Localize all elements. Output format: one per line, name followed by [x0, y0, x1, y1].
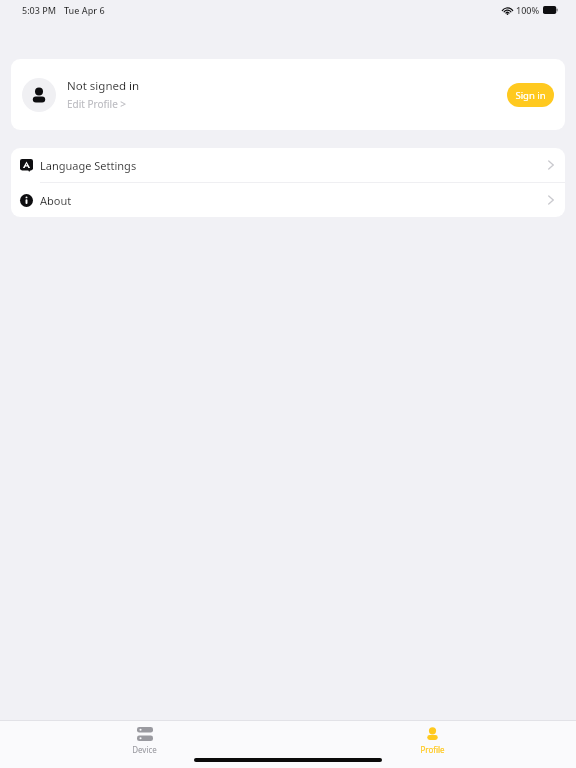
staticText: Not signed in: [67, 78, 140, 94]
staticText: 5:03 PM: [22, 4, 56, 16]
button[interactable]: About: [11, 183, 565, 217]
button[interactable]: Sign in: [507, 83, 554, 107]
staticText: Tue Apr 6: [64, 4, 105, 16]
staticText: 100%: [516, 4, 540, 16]
staticText: Device: [132, 744, 157, 755]
other: Profile avatar: [29, 85, 49, 105]
button[interactable]: Profile avatar: [22, 78, 56, 112]
staticText: Edit Profile >: [67, 97, 127, 111]
button[interactable]: Edit Profile >: [67, 97, 127, 111]
staticText: Sign in: [515, 89, 546, 102]
staticText: Profile: [420, 744, 445, 755]
button[interactable]: Device: [96, 721, 192, 768]
button[interactable]: Language Settings: [11, 148, 565, 182]
staticText: About: [40, 193, 548, 208]
button[interactable]: Profile: [384, 721, 480, 768]
staticText: Language Settings: [40, 158, 548, 173]
